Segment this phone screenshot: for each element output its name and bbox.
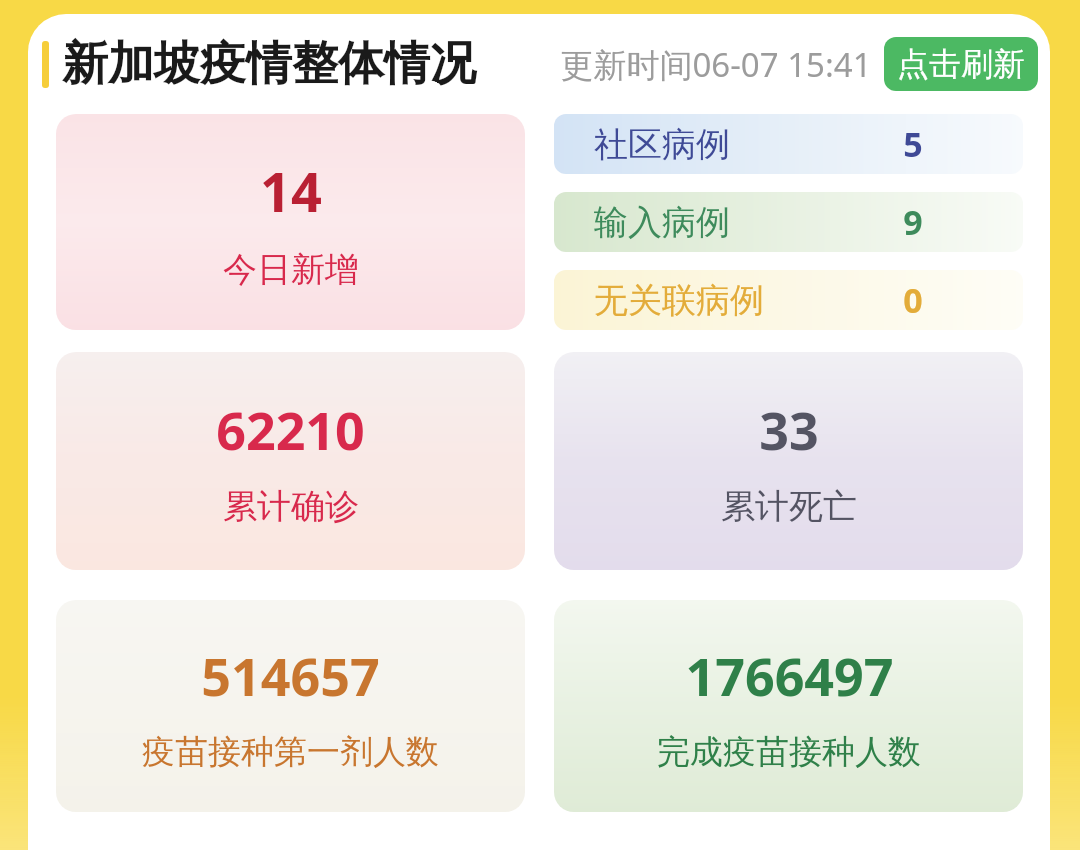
button[interactable]: 社区病例 <box>554 114 1023 174</box>
button[interactable]: 33 <box>554 352 1023 570</box>
button[interactable]: 输入病例 <box>554 192 1023 252</box>
staticText: 514657 <box>201 640 380 711</box>
button[interactable]: 无关联病例 <box>554 270 1023 330</box>
button[interactable]: 点击刷新 <box>884 37 1038 91</box>
staticText: 累计确诊 <box>223 485 359 528</box>
staticText: 33 <box>759 394 819 465</box>
staticText: 更新时间06-07 15:41 <box>560 42 872 87</box>
button[interactable]: 14 <box>56 114 525 330</box>
staticText: 完成疫苗接种人数 <box>657 731 921 773</box>
button[interactable]: 1766497 <box>554 600 1023 812</box>
staticText: 14 <box>260 154 322 228</box>
button[interactable]: 514657 <box>56 600 525 812</box>
staticText: 新加坡疫情整体情况 <box>62 35 476 93</box>
staticText: 5 <box>903 121 923 167</box>
staticText: 无关联病例 <box>594 279 764 322</box>
staticText: 1766497 <box>685 640 894 711</box>
button[interactable]: 62210 <box>56 352 525 570</box>
staticText: 点击刷新 <box>897 44 1025 84</box>
staticText: 疫苗接种第一剂人数 <box>142 731 439 773</box>
staticText: 0 <box>903 277 923 323</box>
staticText: 累计死亡 <box>721 485 857 528</box>
staticText: 输入病例 <box>594 201 730 244</box>
staticText: 62210 <box>216 394 365 465</box>
staticText: 今日新增 <box>223 248 359 291</box>
staticText: 社区病例 <box>594 123 730 166</box>
staticText: 9 <box>903 199 923 245</box>
